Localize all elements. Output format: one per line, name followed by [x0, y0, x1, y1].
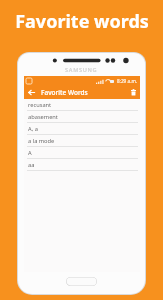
- button[interactable]: abasement: [24, 111, 140, 123]
- button[interactable]: aa: [24, 159, 140, 171]
- staticText: SAMSUNG: [65, 66, 98, 74]
- staticText: abasement: [28, 113, 58, 121]
- button[interactable]: recusant: [24, 99, 140, 111]
- button[interactable]: Home: [66, 277, 97, 286]
- staticText: recusant: [28, 101, 52, 109]
- staticText: Favorite words: [15, 9, 149, 34]
- staticText: a la mode: [28, 137, 55, 145]
- staticText: aa: [28, 161, 35, 169]
- staticText: Favorite Words: [41, 88, 88, 97]
- button[interactable]: Navigate up: [24, 85, 38, 99]
- staticText: A, a: [28, 125, 38, 133]
- staticText: 8:29 a.m.: [117, 78, 138, 84]
- button[interactable]: A, a: [24, 123, 140, 135]
- button[interactable]: A: [24, 147, 140, 159]
- button[interactable]: a la mode: [24, 135, 140, 147]
- button[interactable]: Delete all favorites: [126, 85, 140, 99]
- staticText: A: [28, 149, 32, 157]
